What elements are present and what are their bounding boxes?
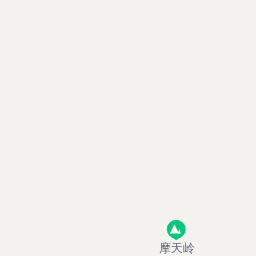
button[interactable]: 摩天岭 scenic spot marker <box>0 0 256 256</box>
staticText: 摩天岭 <box>159 240 195 255</box>
